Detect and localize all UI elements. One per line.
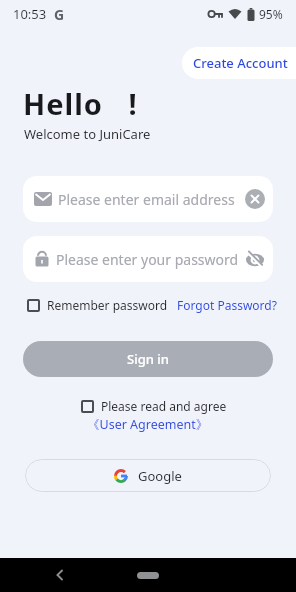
staticText: Welcome to JuniCare [24,125,151,143]
button[interactable]: Google [25,459,271,492]
staticText: Hello ! [23,84,138,123]
button[interactable]: Please read and agree [81,398,227,414]
staticText: Please enter your password [56,250,239,269]
staticText: Sign in [127,350,169,368]
button[interactable]: 《User Agreement》 [87,416,209,433]
staticText: 95% [259,6,283,22]
staticText: 10:53 [13,5,47,23]
button[interactable]: Please enter your password [23,236,273,282]
staticText: Remember password [47,297,168,313]
staticText: Please read and agree [101,398,227,414]
button[interactable]: Sign in [23,341,273,377]
button[interactable] [137,572,159,579]
button[interactable]: Forgot Password? [177,297,277,313]
button[interactable]: Create Account [182,47,296,79]
button[interactable] [245,250,265,268]
button[interactable]: Please enter email address [23,176,273,222]
button[interactable] [56,570,64,580]
button[interactable]: Remember password [23,297,168,313]
button[interactable] [245,189,265,209]
staticText: Create Account [193,54,288,72]
staticText: Please enter email address [58,190,235,209]
staticText: G [54,5,65,24]
staticText: Google [138,467,182,485]
